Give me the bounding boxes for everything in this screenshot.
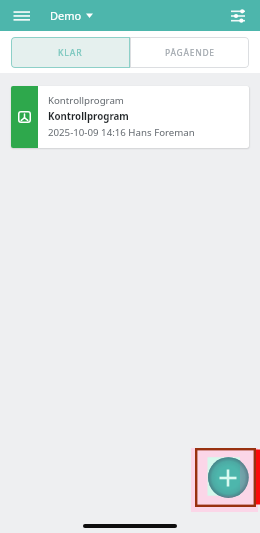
button[interactable]: Filter [225,3,251,29]
button[interactable]: KLAR [11,37,130,68]
button[interactable]: Kontrollprogram [11,86,249,148]
staticText: Demo [50,8,82,23]
staticText: Kontrollprogram [48,110,129,123]
button[interactable]: PÅGÅENDE [130,37,249,68]
staticText: KLAR [58,47,83,59]
button[interactable]: Add [207,457,249,499]
staticText: PÅGÅENDE [165,47,215,59]
button[interactable]: Demo [50,0,93,31]
staticText: Kontrollprogram [48,94,124,107]
button[interactable]: Menu [5,3,31,29]
staticText: 2025-10-09 14:16 Hans Foreman [48,126,195,139]
